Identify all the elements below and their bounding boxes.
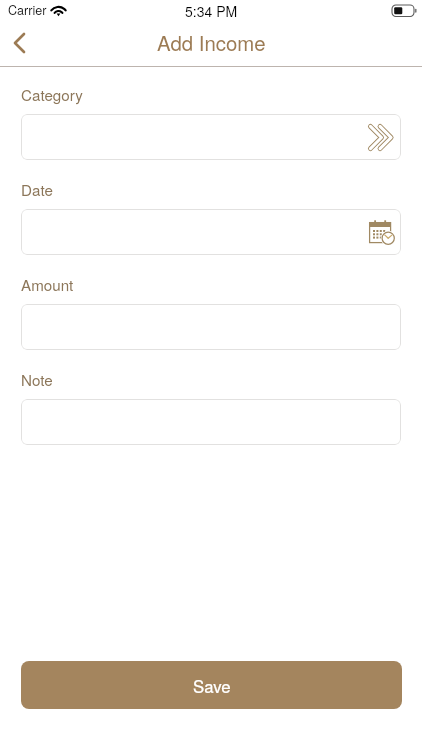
staticText: Date — [21, 179, 53, 201]
button[interactable] — [21, 209, 401, 255]
staticText: Amount — [21, 274, 74, 296]
button[interactable] — [21, 114, 401, 160]
staticText: Save — [193, 674, 231, 698]
staticText: Carrier — [8, 1, 47, 19]
button[interactable] — [21, 304, 401, 350]
button[interactable]: Save — [21, 661, 402, 709]
staticText: Add Income — [157, 28, 266, 57]
staticText: 5:34 PM — [185, 1, 238, 21]
button[interactable] — [21, 399, 401, 445]
staticText: Note — [21, 369, 53, 391]
staticText: Category — [21, 84, 83, 106]
button[interactable]: Back — [0, 22, 42, 66]
